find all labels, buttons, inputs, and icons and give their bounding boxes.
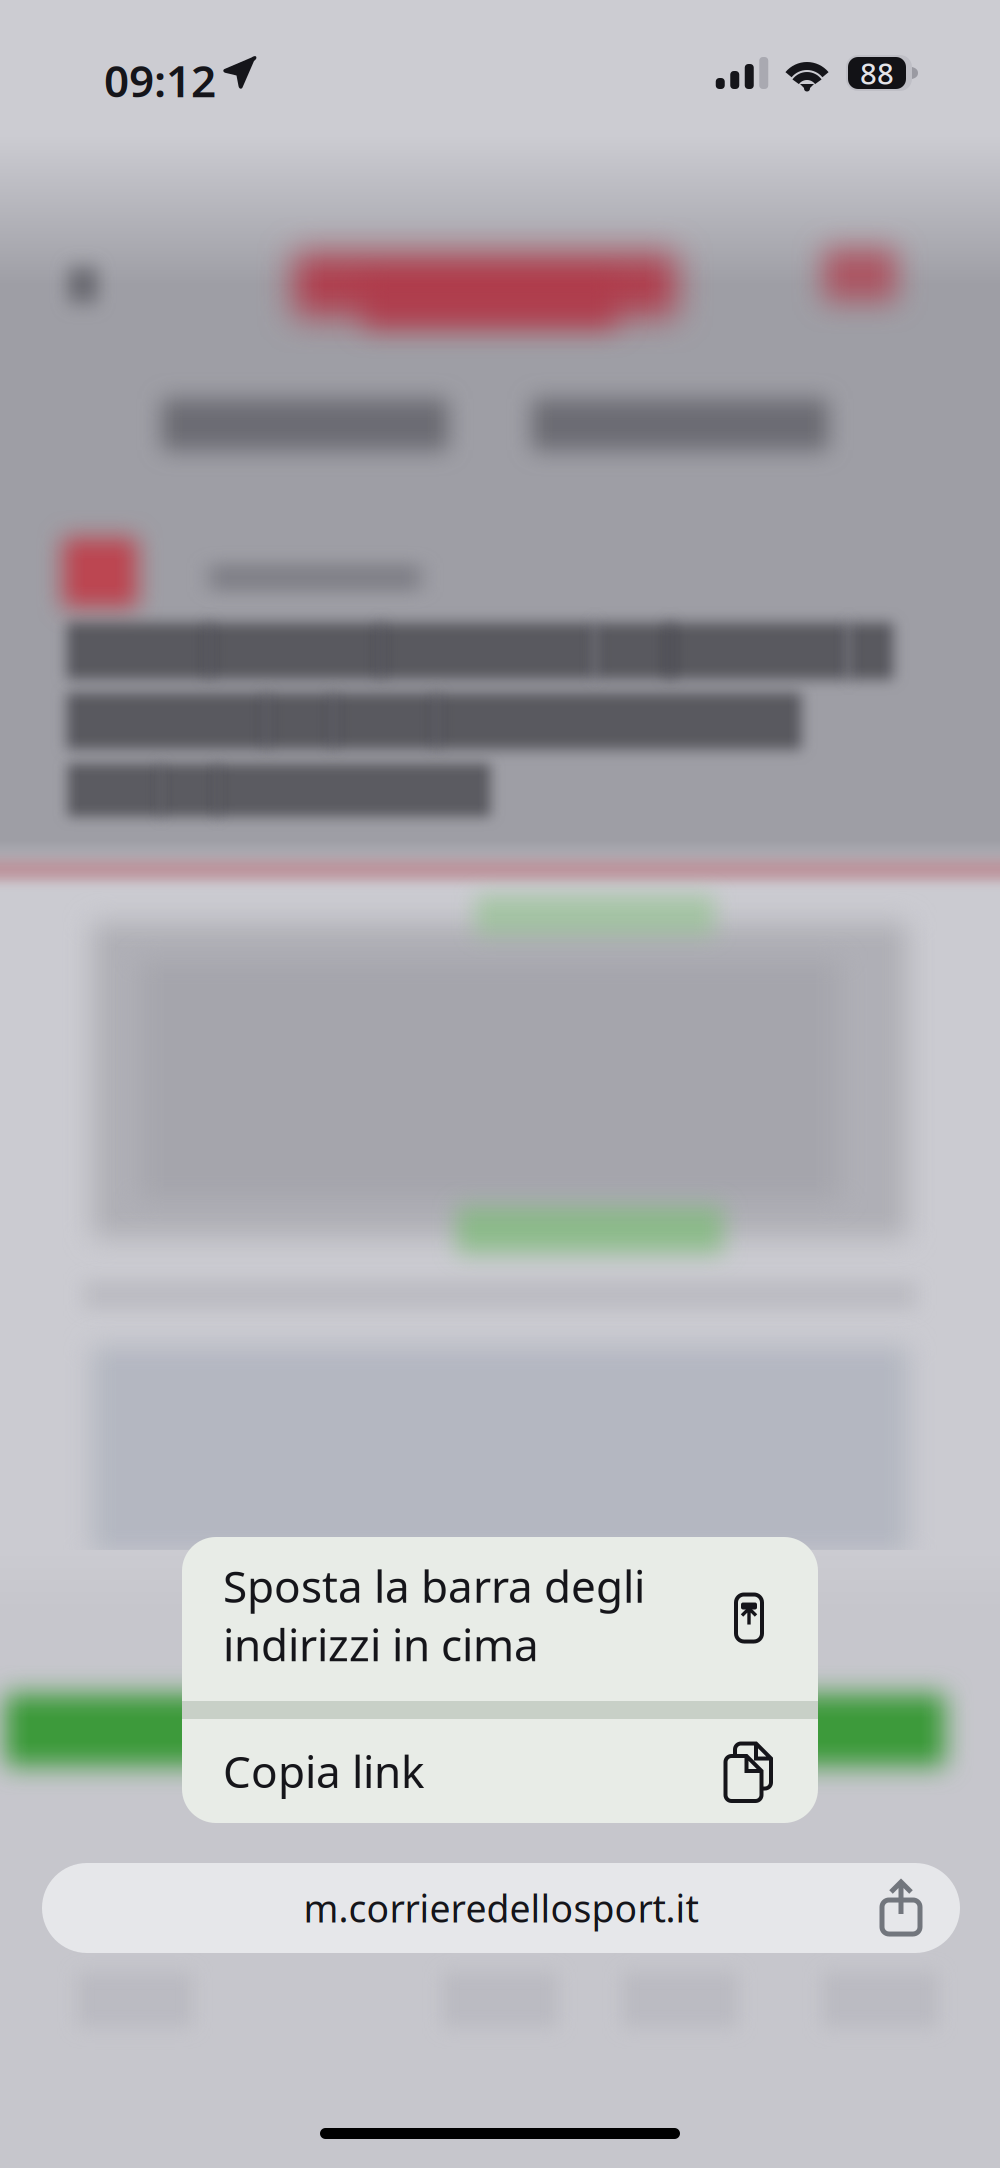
staticText: m.corrieredellosport.it: [303, 1883, 698, 1933]
button[interactable]: m.corrieredellosport.it: [42, 1863, 960, 1953]
staticText: 09:12: [104, 51, 216, 109]
button[interactable]: Copia link: [182, 1719, 818, 1823]
button[interactable]: Sposta la barra degli: [182, 1537, 818, 1701]
staticText: indirizzi in cima: [223, 1615, 539, 1673]
staticText: Copia link: [223, 1742, 424, 1800]
staticText: 88: [860, 53, 894, 92]
staticText: Sposta la barra degli: [223, 1557, 645, 1615]
